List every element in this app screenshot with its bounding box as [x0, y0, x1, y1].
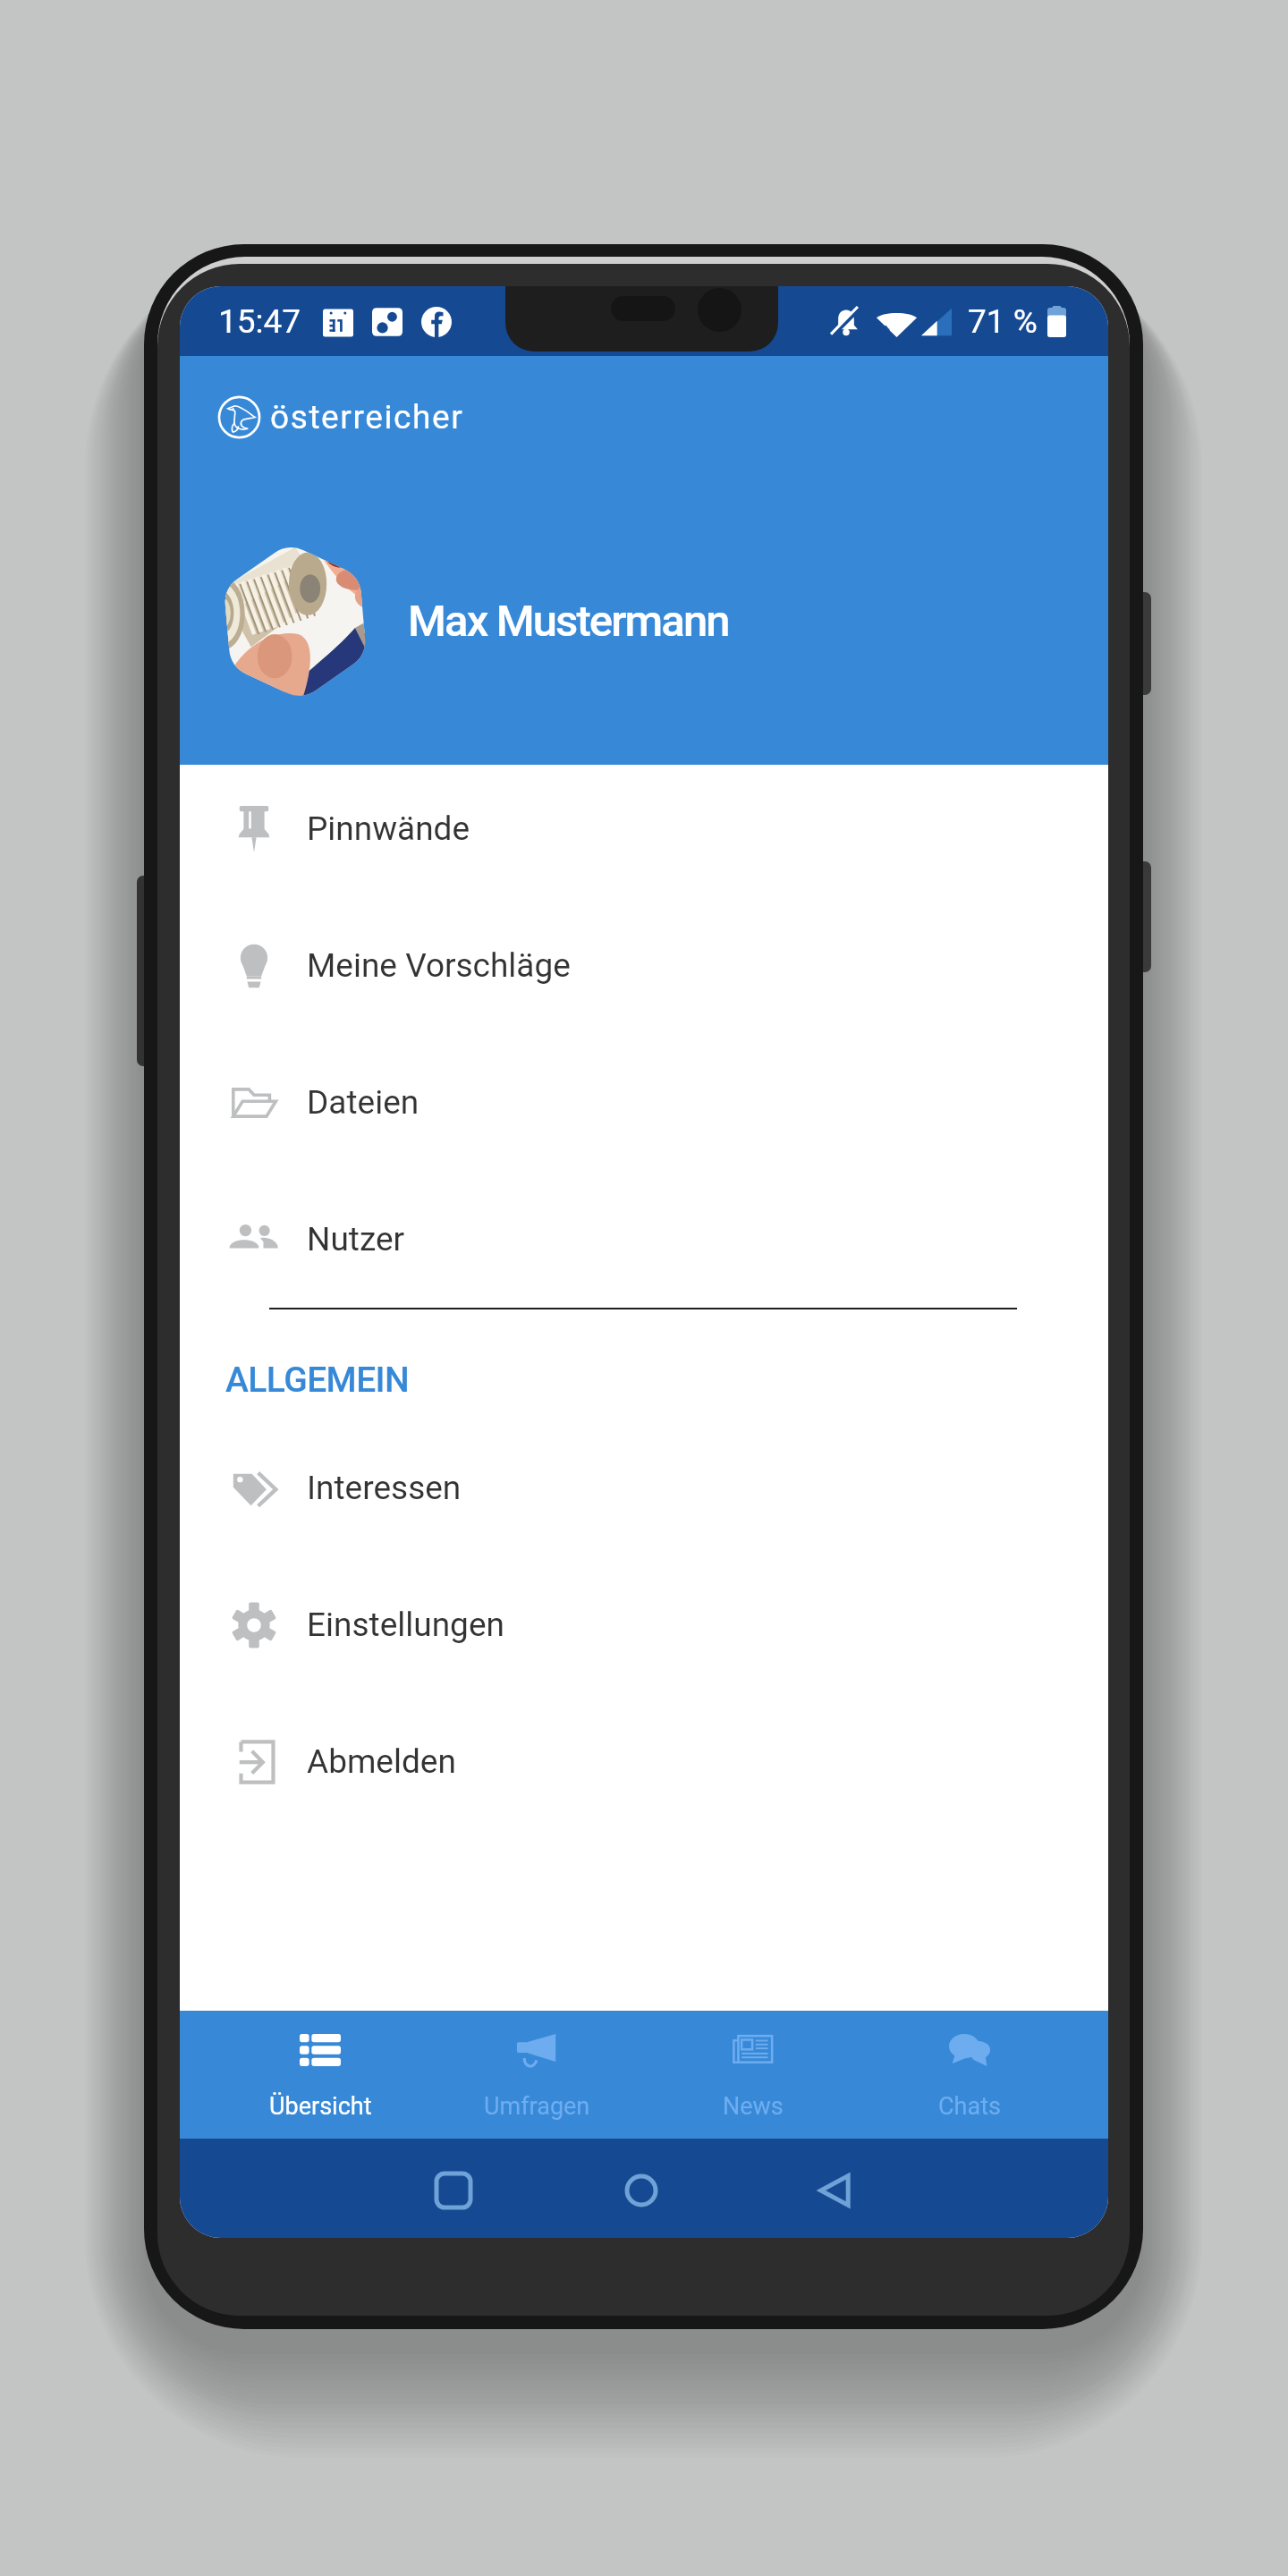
- staticText: Dateien: [307, 1083, 419, 1122]
- staticText: News: [723, 2092, 784, 2121]
- staticText: Max Mustermann: [408, 596, 729, 647]
- staticText: Meine Vorschläge: [307, 946, 571, 985]
- button[interactable]: Recents: [425, 2162, 482, 2219]
- button[interactable]: Interessen: [180, 1419, 1108, 1556]
- button[interactable]: Chats: [861, 2011, 1078, 2121]
- button[interactable]: Home: [613, 2162, 670, 2219]
- staticText: Abmelden: [307, 1742, 456, 1781]
- staticText: Nutzer: [307, 1220, 405, 1258]
- button[interactable]: Pinnwände: [180, 760, 1108, 897]
- staticText: 71 %: [968, 302, 1038, 341]
- button[interactable]: Max Mustermann: [180, 478, 1108, 765]
- button[interactable]: Nutzer: [180, 1171, 1108, 1308]
- button[interactable]: Umfragen: [428, 2011, 645, 2121]
- button[interactable]: Abmelden: [180, 1693, 1108, 1830]
- button[interactable]: österreicher: [180, 356, 1108, 478]
- staticText: Chats: [938, 2092, 1001, 2121]
- button[interactable]: Einstellungen: [180, 1556, 1108, 1693]
- staticText: Umfragen: [484, 2092, 590, 2121]
- button[interactable]: Übersicht: [212, 2011, 428, 2121]
- staticText: Pinnwände: [307, 809, 470, 848]
- staticText: Interessen: [307, 1469, 462, 1507]
- staticText: 15:47: [218, 302, 301, 341]
- button[interactable]: News: [645, 2011, 861, 2121]
- button[interactable]: Meine Vorschläge: [180, 897, 1108, 1034]
- staticText: Übersicht: [269, 2092, 372, 2121]
- button[interactable]: Dateien: [180, 1034, 1108, 1171]
- staticText: Einstellungen: [307, 1606, 504, 1644]
- staticText: österreicher: [270, 398, 464, 436]
- button[interactable]: Back: [806, 2162, 863, 2219]
- staticText: ALLGEMEIN: [225, 1360, 410, 1401]
